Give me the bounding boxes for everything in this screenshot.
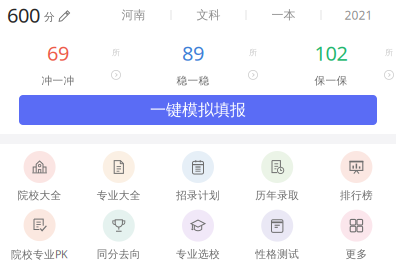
button[interactable]: 历年录取	[238, 151, 317, 202]
staticText: 河南	[121, 8, 145, 22]
staticText: 所	[385, 48, 393, 57]
button[interactable]: 600	[0, 0, 71, 34]
staticText: 69	[47, 40, 69, 66]
button[interactable]: 院校大全	[0, 151, 79, 202]
button[interactable]: 性格测试	[238, 210, 317, 261]
staticText: 排行榜	[340, 189, 373, 202]
button[interactable]: 文科	[171, 0, 246, 30]
staticText: 2021	[344, 7, 372, 23]
staticText: 保一保	[314, 74, 347, 87]
staticText: 专业大全	[97, 189, 141, 202]
staticText: 所	[112, 48, 120, 57]
staticText: 更多	[345, 248, 367, 261]
staticText: 招录计划	[176, 189, 220, 202]
button[interactable]: 102	[264, 41, 396, 83]
staticText: 文科	[196, 8, 220, 22]
staticText: 102	[314, 40, 347, 66]
staticText: 院校大全	[18, 189, 62, 202]
staticText: 冲一冲	[41, 74, 74, 87]
button[interactable]: 一键模拟填报	[19, 95, 377, 125]
button[interactable]: 89	[132, 41, 264, 83]
staticText: 分	[44, 10, 55, 23]
button[interactable]: 排行榜	[317, 151, 396, 202]
staticText: 所	[249, 48, 257, 57]
staticText: 600	[7, 2, 40, 28]
staticText: 稳一稳	[176, 74, 209, 87]
button[interactable]: 专业选校	[158, 210, 238, 261]
staticText: 专业选校	[176, 248, 220, 261]
staticText: 院校专业PK	[11, 247, 68, 261]
staticText: 性格测试	[255, 248, 299, 261]
staticText: 历年录取	[255, 189, 299, 202]
button[interactable]: 同分去向	[79, 210, 158, 261]
button[interactable]: 一本	[246, 0, 321, 30]
button[interactable]: 2021	[321, 0, 396, 30]
button[interactable]: 河南	[96, 0, 171, 30]
button[interactable]: 69	[0, 41, 132, 83]
button[interactable]: 专业大全	[79, 151, 158, 202]
button[interactable]: 更多	[317, 210, 396, 261]
staticText: 一键模拟填报	[150, 100, 246, 120]
button[interactable]: 院校专业PK	[0, 209, 79, 261]
button[interactable]: 招录计划	[158, 151, 238, 202]
staticText: 同分去向	[97, 248, 141, 261]
staticText: 一本	[271, 8, 295, 22]
staticText: 89	[182, 40, 204, 66]
